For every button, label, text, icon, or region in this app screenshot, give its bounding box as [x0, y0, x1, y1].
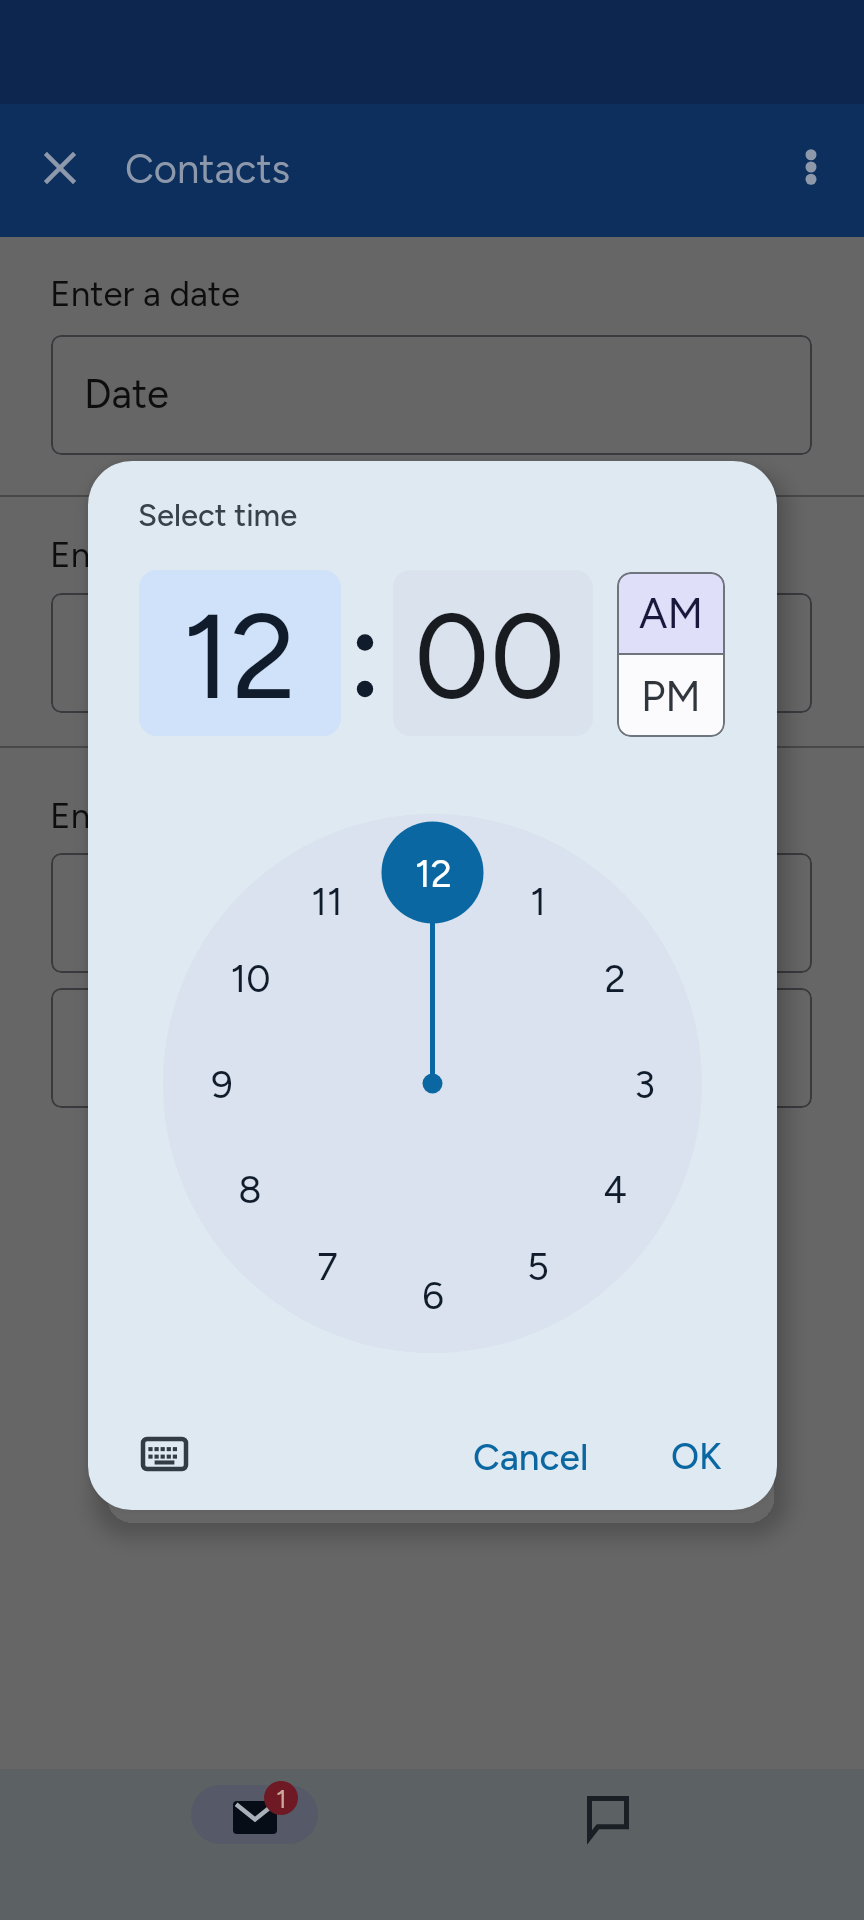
button[interactable]: Chat [432, 1769, 864, 1920]
staticText: PM [641, 671, 701, 721]
button[interactable]: 11 [282, 869, 372, 935]
staticText: 12 [415, 851, 452, 897]
staticText: Enter a date [50, 795, 241, 837]
staticText: 2 [604, 956, 626, 1002]
button[interactable]: 5 [493, 1234, 583, 1300]
button[interactable]: 6 [388, 1263, 478, 1329]
button[interactable]: 4 [570, 1157, 660, 1223]
staticText: 4 [603, 1167, 627, 1213]
button[interactable]: 12 [388, 841, 478, 907]
staticText: Contacts [125, 145, 291, 193]
staticText: 11 [311, 879, 343, 925]
button[interactable]: 8 [205, 1157, 295, 1223]
button[interactable]: Date [51, 335, 812, 455]
staticText: AM [639, 588, 703, 638]
staticText: 8 [238, 1167, 262, 1213]
button[interactable] [51, 853, 812, 973]
staticText: 6 [422, 1273, 444, 1319]
button[interactable]: Switch to text input [121, 1411, 207, 1497]
staticText: 1 [276, 1783, 287, 1814]
staticText: Date [84, 370, 169, 418]
staticText: 5 [527, 1244, 549, 1290]
button[interactable] [51, 988, 812, 1108]
button[interactable]: 3 [599, 1052, 689, 1118]
staticText: Cancel [473, 1435, 589, 1479]
staticText: Select time [138, 497, 298, 534]
staticText: 10 [230, 956, 271, 1002]
button[interactable]: 1 [493, 869, 583, 935]
button[interactable]: 7 [282, 1234, 372, 1300]
button[interactable]: 12 [139, 570, 341, 736]
button[interactable]: Close [26, 134, 94, 202]
staticText: 12 [182, 586, 297, 728]
button[interactable]: More options [777, 133, 845, 201]
staticText: Enter a date [50, 273, 241, 315]
button[interactable] [51, 593, 812, 713]
button[interactable]: 00 [393, 570, 593, 736]
staticText: 1 [530, 879, 546, 925]
staticText: OK [671, 1435, 722, 1478]
button[interactable]: Cancel [459, 1423, 603, 1491]
button[interactable]: OK [657, 1423, 736, 1490]
staticText: 9 [211, 1062, 233, 1108]
staticText: 00 [414, 586, 566, 728]
staticText: Enter a time [50, 534, 240, 576]
button[interactable]: AM [617, 572, 725, 653]
button[interactable]: Mail [0, 1769, 432, 1920]
button[interactable]: PM [617, 655, 725, 737]
button[interactable]: 9 [177, 1052, 267, 1118]
button[interactable]: 10 [205, 946, 295, 1012]
staticText: 7 [317, 1244, 338, 1290]
staticText: 3 [634, 1062, 655, 1108]
button[interactable]: 2 [570, 946, 660, 1012]
